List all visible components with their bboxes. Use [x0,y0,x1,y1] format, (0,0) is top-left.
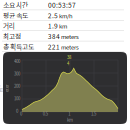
staticText: 384 meters [48,31,79,41]
staticText: 총 획득고도 [3,42,34,51]
staticText: meter [3,79,11,97]
staticText: 평균 속도 [3,10,28,20]
staticText: 221 meters [48,42,79,51]
staticText: 2.5 km/h [48,11,73,20]
staticText: 0.5 [43,111,48,117]
button[interactable]: 소요 시간 [0,0,130,10]
staticText: 300 [14,70,20,77]
staticText: 200 [14,83,20,89]
button[interactable]: 거리 [0,21,130,31]
staticText: 400 [14,58,20,64]
staticText: 소요 시간 [3,0,28,10]
button[interactable]: 총 획득고도 [0,42,130,52]
staticText: 1.5 [91,111,96,117]
staticText: 1.9 km [48,21,67,30]
staticText: 100 [14,95,20,102]
staticText: 0 [20,111,22,117]
staticText: 거리 [3,21,15,31]
staticText: 384 [67,54,71,66]
button[interactable]: 최고점 [0,31,130,42]
staticText: 1 [68,111,70,117]
button[interactable]: 평균 속도 [0,10,130,21]
staticText: 00:53:57 [48,0,76,10]
staticText: km [67,117,73,123]
staticText: 0 [16,108,18,114]
staticText: 최고점 [3,31,21,41]
